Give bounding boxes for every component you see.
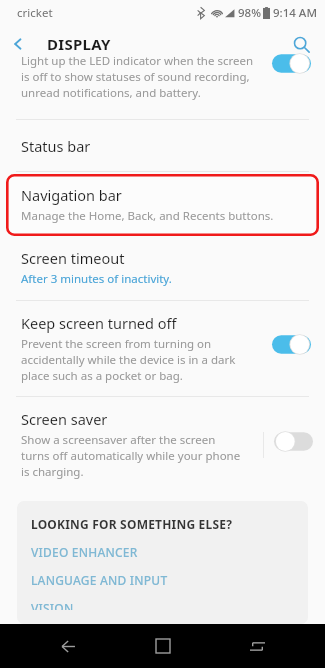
staticText: Screen saver <box>21 409 108 429</box>
staticText: Navigation bar <box>21 185 122 205</box>
staticText: Prevent the screen from turning on accid… <box>21 336 236 384</box>
button[interactable]: Back <box>41 624 95 668</box>
button[interactable]: Navigation bar <box>6 174 319 236</box>
staticText: Keep screen turned off <box>21 313 177 333</box>
staticText: Show a screensaver after the screen turn… <box>21 432 241 480</box>
button[interactable]: VIDEO ENHANCER <box>31 544 294 560</box>
button[interactable]: Toggle on <box>272 53 311 74</box>
button[interactable]: Toggle off <box>274 431 313 452</box>
button[interactable]: Keep screen turned off <box>0 301 325 396</box>
button[interactable]: Toggle on <box>272 334 311 355</box>
staticText: VIDEO ENHANCER <box>31 544 138 560</box>
button[interactable]: Screen timeout <box>0 238 325 300</box>
button[interactable]: VISION <box>31 600 294 610</box>
button[interactable]: Light up the LED indicator when the scre… <box>0 62 325 110</box>
staticText: 98% <box>238 5 261 21</box>
button[interactable]: Screen saver <box>0 397 325 492</box>
staticText: Manage the Home, Back, and Recents butto… <box>21 208 274 224</box>
button[interactable]: LANGUAGE AND INPUT <box>31 572 294 588</box>
button[interactable]: Status bar <box>0 120 325 171</box>
button[interactable]: Back <box>0 26 36 62</box>
staticText: DISPLAY <box>47 34 111 54</box>
staticText: LANGUAGE AND INPUT <box>31 572 168 588</box>
staticText: Status bar <box>21 136 91 156</box>
button[interactable]: Search <box>283 26 319 62</box>
staticText: LOOKING FOR SOMETHING ELSE? <box>31 516 233 532</box>
staticText: 9:14 AM <box>273 5 317 21</box>
staticText: VISION <box>31 600 74 610</box>
staticText: Screen timeout <box>21 248 125 268</box>
staticText: Light up the LED indicator when the scre… <box>21 53 254 101</box>
button[interactable]: Home <box>136 624 190 668</box>
button[interactable]: Recents <box>230 624 284 668</box>
staticText: After 3 minutes of inactivity. <box>21 271 172 287</box>
staticText: cricket <box>17 5 53 21</box>
